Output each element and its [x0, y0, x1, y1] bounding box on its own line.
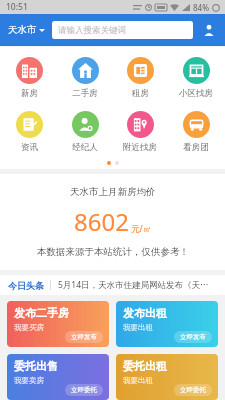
- button[interactable]: 请输入搜索关键词: [52, 21, 193, 39]
- button[interactable]: 附近找房: [117, 109, 163, 155]
- staticText: 请输入搜索关键词: [58, 25, 126, 36]
- button[interactable]: 租房: [117, 55, 163, 101]
- button[interactable]: 资讯: [6, 109, 52, 155]
- staticText: 元/㎡: [131, 223, 152, 235]
- button[interactable]: 发布二手房: [7, 301, 109, 347]
- button[interactable]: 二手房: [62, 55, 108, 101]
- staticText: 立即委托: [180, 386, 206, 394]
- button[interactable]: 看房团: [173, 109, 219, 155]
- staticText: 本数据来源于本站统计，仅供参考！: [37, 246, 189, 258]
- button[interactable]: 新房: [6, 55, 52, 101]
- button[interactable]: 委托出售: [7, 354, 109, 400]
- staticText: 立即发布: [71, 333, 97, 341]
- staticText: 看房团: [183, 142, 209, 153]
- staticText: 租房: [132, 88, 149, 99]
- staticText: 5月14日，天水市住建局网站发布《天水市…: [58, 279, 217, 291]
- staticText: 附近找房: [123, 142, 157, 153]
- button[interactable]: 委托出租: [116, 354, 218, 400]
- button[interactable]: 今日头条: [0, 275, 225, 295]
- staticText: 我要买房: [14, 323, 44, 332]
- button[interactable]: 发布出租: [116, 301, 218, 347]
- button[interactable]: 经纪人: [62, 109, 108, 155]
- staticText: 资讯: [21, 142, 38, 153]
- staticText: 委托出租: [123, 359, 167, 373]
- button[interactable]: 小区找房: [173, 55, 219, 101]
- button[interactable]: 个人中心: [200, 21, 218, 39]
- staticText: 新房: [21, 88, 38, 99]
- staticText: 发布出租: [123, 306, 167, 320]
- staticText: 我要出租: [123, 376, 153, 385]
- staticText: 天水市上月新房均价: [70, 186, 156, 198]
- staticText: 二手房: [72, 88, 98, 99]
- staticText: 委托出售: [14, 359, 58, 373]
- staticText: 发布二手房: [14, 306, 69, 320]
- button[interactable]: 天水市: [7, 20, 46, 40]
- staticText: 10:51: [6, 1, 28, 13]
- staticText: 我要出租: [123, 323, 153, 332]
- staticText: 今日头条: [8, 280, 44, 291]
- staticText: 经纪人: [72, 142, 98, 153]
- staticText: 立即委托: [71, 386, 97, 394]
- staticText: 8602: [74, 205, 129, 238]
- staticText: 天水市: [8, 24, 37, 36]
- staticText: 小区找房: [179, 88, 213, 99]
- staticText: 我要卖房: [14, 376, 44, 385]
- staticText: 84%: [193, 2, 209, 13]
- staticText: 立即发布: [180, 333, 206, 341]
